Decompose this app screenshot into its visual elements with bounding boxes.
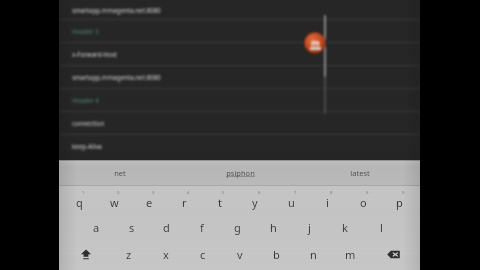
button[interactable]: j (291, 216, 327, 238)
staticText: e (146, 195, 153, 210)
staticText: Header 4 (72, 96, 99, 104)
staticText: 5 (222, 190, 225, 196)
button[interactable]: Shift (62, 243, 110, 265)
staticText: net (114, 168, 126, 178)
staticText: n (310, 247, 317, 262)
staticText: connection (72, 119, 105, 127)
staticText: i (326, 195, 329, 210)
button[interactable]: psiphon (180, 161, 300, 185)
staticText: m (311, 36, 320, 48)
staticText: 1 (82, 190, 85, 196)
staticText: c (200, 247, 206, 262)
staticText: psiphon (226, 168, 255, 178)
staticText: g (234, 220, 241, 235)
staticText: 6 (258, 190, 261, 196)
button[interactable]: 7 (273, 189, 309, 211)
staticText: o (360, 195, 367, 210)
button[interactable]: connection (59, 111, 420, 134)
button[interactable]: k (327, 216, 363, 238)
button[interactable]: x-Forward-Host (59, 42, 420, 65)
button[interactable]: 1 (62, 189, 97, 211)
staticText: l (380, 220, 383, 235)
staticText: t (218, 195, 222, 210)
button[interactable]: Header 3 (59, 19, 420, 42)
staticText: j (308, 220, 311, 235)
staticText: m (345, 247, 356, 262)
button[interactable]: 8 (309, 189, 345, 211)
button[interactable]: 0 (381, 189, 417, 211)
staticText: 7 (294, 190, 297, 196)
button[interactable]: v (221, 243, 258, 265)
button[interactable]: 3 (132, 189, 167, 211)
staticText: smartapp.mmagenta.net:8080 (72, 6, 161, 14)
button[interactable]: d (149, 216, 184, 238)
staticText: 4 (187, 190, 190, 196)
staticText: a (93, 220, 100, 235)
button[interactable]: z (110, 243, 147, 265)
staticText: 2 (117, 190, 120, 196)
staticText: x-Forward-Host (72, 50, 117, 58)
button[interactable]: m (332, 243, 369, 265)
button[interactable]: 5 (202, 189, 237, 211)
button[interactable]: 6 (237, 189, 273, 211)
staticText: v (237, 247, 243, 262)
staticText: y (252, 195, 258, 210)
staticText: z (126, 247, 132, 262)
button[interactable]: net (59, 161, 180, 185)
button[interactable]: 4 (167, 189, 202, 211)
button[interactable]: App logo (304, 32, 326, 54)
button[interactable]: l (363, 216, 399, 238)
button[interactable]: smartapp.mmagenta.net:8080 (59, 0, 420, 19)
staticText: 9 (366, 190, 369, 196)
button[interactable]: 2 (97, 189, 132, 211)
staticText: h (270, 220, 277, 235)
staticText: latest (350, 168, 370, 178)
button[interactable]: c (184, 243, 221, 265)
button[interactable]: smartapp.mmagenta.net:8080 (59, 65, 420, 88)
button[interactable]: 9 (345, 189, 381, 211)
button[interactable]: n (295, 243, 332, 265)
staticText: b (273, 247, 280, 262)
staticText: d (163, 220, 170, 235)
staticText: smartapp.mmagenta.net:8080 (72, 73, 161, 81)
staticText: x (163, 247, 169, 262)
staticText: k (342, 220, 348, 235)
staticText: w (110, 195, 119, 210)
staticText: 8 (330, 190, 333, 196)
staticText: u (288, 195, 295, 210)
button[interactable]: f (184, 216, 219, 238)
button[interactable]: s (114, 216, 149, 238)
button[interactable]: Header 4 (59, 88, 420, 111)
button[interactable]: g (219, 216, 255, 238)
button[interactable]: b (258, 243, 295, 265)
staticText: s (129, 220, 135, 235)
staticText: Header 3 (72, 27, 99, 35)
button[interactable]: a (79, 216, 114, 238)
staticText: f (200, 220, 204, 235)
staticText: q (76, 195, 83, 210)
button[interactable]: h (255, 216, 291, 238)
staticText: 0 (402, 190, 405, 196)
button[interactable]: latest (300, 161, 420, 185)
staticText: 3 (152, 190, 155, 196)
button[interactable]: x (147, 243, 184, 265)
staticText: keep-Aliva (72, 142, 102, 150)
button[interactable]: Backspace (369, 243, 417, 265)
staticText: p (396, 195, 403, 210)
staticText: r (182, 195, 187, 210)
button[interactable]: keep-Aliva (59, 134, 420, 157)
